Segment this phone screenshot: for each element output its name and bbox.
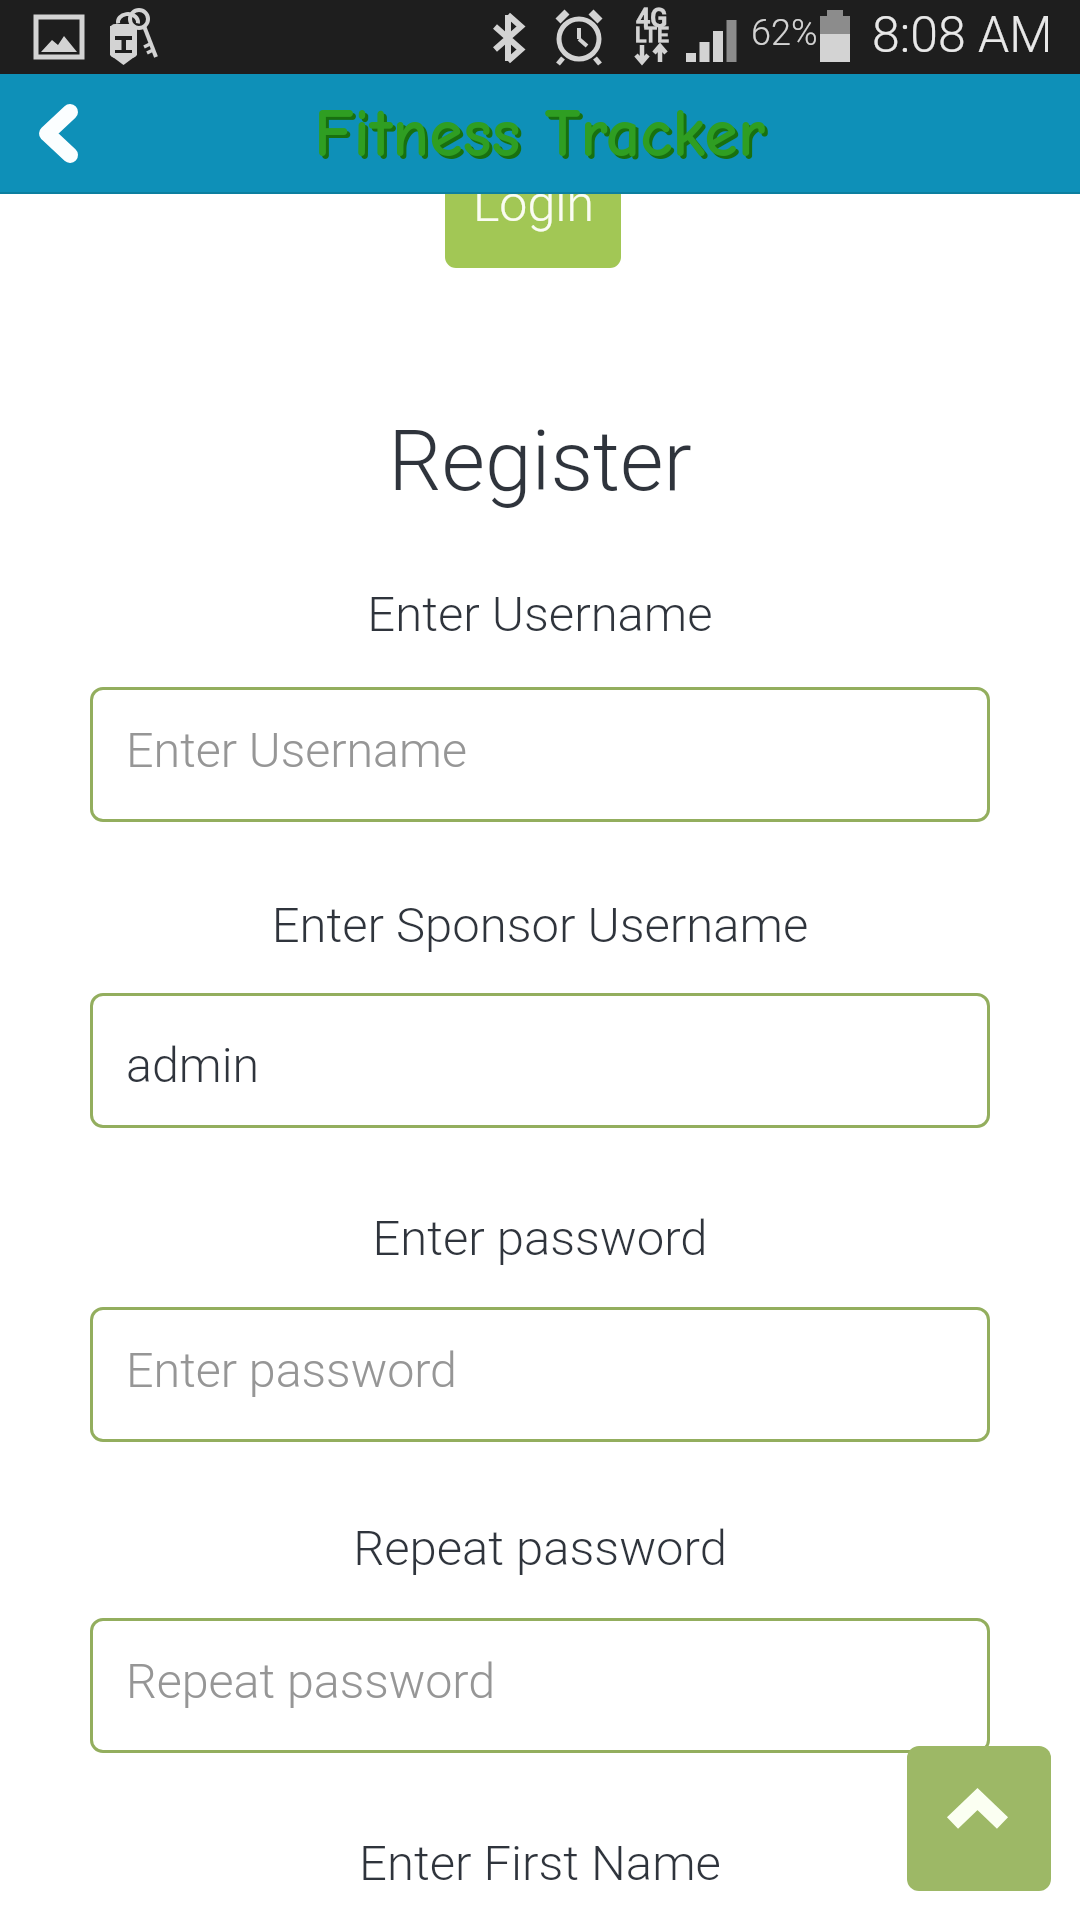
button[interactable]: Enter Username xyxy=(90,687,990,822)
staticText: 62% xyxy=(751,12,818,54)
staticText: LTE xyxy=(635,23,669,48)
staticText: Register xyxy=(0,412,1080,510)
staticText: 8:08 AM xyxy=(872,6,1053,65)
staticText: Enter Username xyxy=(0,586,1080,643)
button[interactable]: Back xyxy=(0,74,116,194)
staticText: Fitness Tracker xyxy=(314,95,766,173)
staticText: Repeat password xyxy=(0,1520,1080,1577)
staticText: Repeat password xyxy=(126,1653,496,1710)
button[interactable]: Enter password xyxy=(90,1307,990,1442)
staticText: Enter password xyxy=(0,1210,1080,1267)
staticText: 4G xyxy=(636,4,668,33)
button[interactable]: Login xyxy=(445,131,621,268)
staticText: Enter First Name xyxy=(0,1835,1080,1892)
button[interactable]: Repeat password xyxy=(90,1618,990,1753)
button[interactable]: admin xyxy=(90,993,990,1128)
staticText: Enter Sponsor Username xyxy=(0,897,1080,954)
button[interactable]: Scroll to top xyxy=(907,1746,1051,1891)
staticText: admin xyxy=(126,1037,260,1094)
staticText: Enter Username xyxy=(126,722,467,779)
staticText: Fitness Tracker xyxy=(317,98,769,176)
staticText: Enter password xyxy=(126,1342,458,1399)
staticText: Login xyxy=(473,175,594,234)
